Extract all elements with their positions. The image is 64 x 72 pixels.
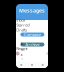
staticText: Drafts (16, 27, 27, 33)
staticText: Inbox (16, 17, 25, 23)
staticText: Messages (19, 7, 45, 14)
staticText: Alex (21, 41, 25, 57)
staticText: Starred (16, 22, 29, 28)
staticText: Archive (25, 42, 39, 47)
button[interactable]: Tab (37, 62, 48, 68)
button[interactable]: Archive (20, 42, 44, 46)
button[interactable]: Compose (20, 32, 44, 36)
staticText: Hi (21, 57, 24, 60)
button[interactable]: Tab (27, 62, 37, 68)
staticText: Compose (24, 32, 41, 37)
button[interactable]: Tab (16, 62, 27, 68)
staticText: Recent (16, 46, 27, 51)
button[interactable]: Alex (14, 50, 51, 56)
